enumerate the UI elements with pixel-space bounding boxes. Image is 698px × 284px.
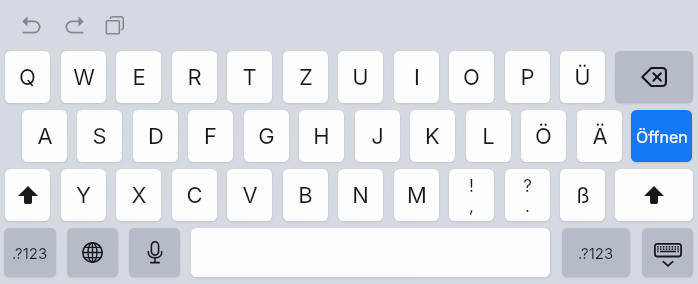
staticText: K <box>425 123 440 150</box>
button[interactable]: M <box>394 169 439 221</box>
button[interactable]: B <box>283 169 328 221</box>
button[interactable]: N <box>338 169 383 221</box>
button[interactable]: Y <box>61 169 106 221</box>
staticText: R <box>187 64 202 91</box>
staticText: Q <box>19 64 36 91</box>
button[interactable]: O <box>449 51 494 103</box>
button[interactable]: P <box>505 51 550 103</box>
staticText: , <box>469 196 474 217</box>
staticText: D <box>148 123 164 150</box>
button[interactable]: I <box>394 51 439 103</box>
staticText: Y <box>76 182 91 209</box>
button[interactable]: A <box>22 110 67 162</box>
button[interactable]: D <box>133 110 178 162</box>
button[interactable]: L <box>466 110 511 162</box>
staticText: Öffnen <box>636 127 688 146</box>
button[interactable]: Change keyboard <box>67 228 118 277</box>
button[interactable]: J <box>355 110 400 162</box>
staticText: H <box>313 123 330 150</box>
staticText: A <box>37 123 53 150</box>
staticText: C <box>186 182 203 209</box>
staticText: U <box>352 64 369 91</box>
staticText: I <box>414 64 420 91</box>
staticText: Ö <box>535 123 552 150</box>
button[interactable]: .?123 <box>4 228 56 277</box>
staticText: N <box>352 182 369 209</box>
button[interactable]: T <box>227 51 272 103</box>
staticText: X <box>131 182 147 209</box>
button[interactable]: Ö <box>521 110 566 162</box>
staticText: L <box>482 123 495 150</box>
staticText: P <box>520 64 535 91</box>
button[interactable]: R <box>172 51 217 103</box>
staticText: O <box>463 64 480 91</box>
staticText: . <box>525 196 530 217</box>
staticText: Z <box>299 64 313 91</box>
button[interactable]: ! <box>449 169 494 221</box>
staticText: V <box>242 182 258 209</box>
staticText: E <box>132 64 146 91</box>
button[interactable]: E <box>116 51 161 103</box>
button[interactable]: F <box>188 110 233 162</box>
button[interactable]: W <box>61 51 106 103</box>
staticText: .?123 <box>12 244 48 262</box>
button[interactable]: Copy <box>101 10 129 38</box>
button[interactable]: ? <box>505 169 550 221</box>
button[interactable]: Hide keyboard <box>642 228 693 277</box>
button[interactable]: Z <box>283 51 328 103</box>
staticText: S <box>92 123 107 150</box>
button[interactable]: G <box>244 110 289 162</box>
button[interactable]: Voice input <box>129 228 180 277</box>
button[interactable]: Ä <box>577 110 622 162</box>
button[interactable]: C <box>172 169 217 221</box>
button[interactable]: H <box>299 110 344 162</box>
button[interactable]: X <box>116 169 161 221</box>
staticText: J <box>371 123 384 150</box>
staticText: .?123 <box>578 244 614 262</box>
staticText: ß <box>576 182 590 209</box>
button[interactable]: V <box>227 169 272 221</box>
button[interactable]: Ü <box>560 51 605 103</box>
staticText: M <box>407 182 427 209</box>
button[interactable]: Shift <box>5 169 50 221</box>
staticText: ! <box>469 176 474 197</box>
button[interactable]: Redo <box>60 9 88 39</box>
button[interactable]: U <box>338 51 383 103</box>
staticText: W <box>73 64 95 91</box>
button[interactable]: ß <box>560 169 605 221</box>
button[interactable]: Öffnen <box>631 110 692 162</box>
staticText: T <box>242 64 257 91</box>
button[interactable]: K <box>410 110 455 162</box>
staticText: Ü <box>574 64 591 91</box>
staticText: ? <box>523 176 532 197</box>
staticText: G <box>258 123 275 150</box>
staticText: Ä <box>592 123 608 150</box>
button[interactable]: Backspace <box>615 51 693 103</box>
staticText: F <box>204 123 217 150</box>
button[interactable]: .?123 <box>562 228 630 277</box>
button[interactable]: Shift <box>615 169 693 221</box>
button[interactable]: S <box>77 110 122 162</box>
staticText: B <box>298 182 313 209</box>
button[interactable]: Q <box>5 51 50 103</box>
button[interactable]: Undo <box>17 9 45 39</box>
